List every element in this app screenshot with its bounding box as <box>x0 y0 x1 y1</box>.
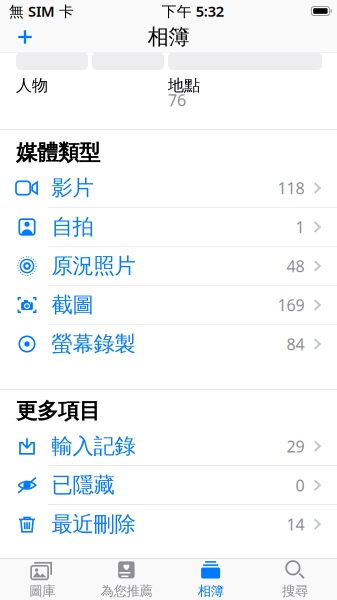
staticText: 截圖 <box>51 292 93 318</box>
button[interactable]: 截圖 <box>0 286 337 324</box>
staticText: 29 <box>286 436 304 457</box>
staticText: 自拍 <box>51 214 93 240</box>
staticText: 影片 <box>51 175 93 201</box>
button[interactable]: 圖庫 <box>0 559 84 600</box>
staticText: 螢幕錄製 <box>51 331 135 357</box>
button[interactable]: 相簿 <box>168 559 253 600</box>
staticText: 1 <box>295 216 304 238</box>
button[interactable]: 螢幕錄製 <box>0 325 337 363</box>
staticText: 無 SIM 卡 <box>9 1 74 21</box>
staticText: 相簿 <box>147 24 189 50</box>
button[interactable]: 最近刪除 <box>0 505 337 543</box>
staticText: 已隱藏 <box>51 472 114 498</box>
button[interactable]: 輸入記錄 <box>0 427 337 465</box>
button[interactable]: 已隱藏 <box>0 466 337 504</box>
staticText: 相簿 <box>198 583 224 599</box>
staticText: 輸入記錄 <box>51 433 135 459</box>
staticText: 169 <box>277 294 304 316</box>
staticText: 118 <box>277 177 304 199</box>
staticText: 48 <box>286 255 304 277</box>
button[interactable]: 新增相簿 <box>8 22 42 52</box>
staticText: 下午 5:32 <box>162 1 224 21</box>
button[interactable]: 搜尋 <box>253 559 337 600</box>
button[interactable]: 自拍 <box>0 208 337 246</box>
staticText: 14 <box>286 514 304 535</box>
staticText: 76 <box>168 89 186 111</box>
staticText: 更多項目 <box>16 398 100 424</box>
staticText: 搜尋 <box>282 583 308 599</box>
staticText: 圖庫 <box>29 583 55 599</box>
button[interactable]: 為您推薦 <box>84 559 168 600</box>
button[interactable]: 原況照片 <box>0 247 337 285</box>
staticText: 為您推薦 <box>100 583 152 599</box>
staticText: 84 <box>286 333 304 355</box>
staticText: 人物 <box>16 76 48 95</box>
button[interactable]: 影片 <box>0 169 337 207</box>
staticText: 最近刪除 <box>51 511 135 537</box>
staticText: 媒體類型 <box>16 140 100 166</box>
staticText: 地點 <box>168 76 200 95</box>
staticText: 原況照片 <box>51 253 135 279</box>
staticText: 0 <box>295 475 304 496</box>
